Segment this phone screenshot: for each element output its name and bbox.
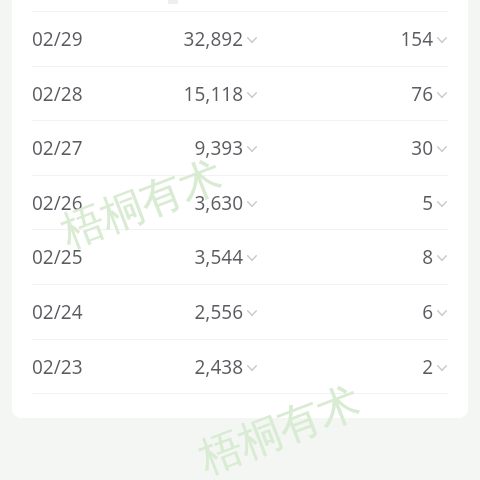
staticText: 02/29 xyxy=(32,26,83,52)
staticText: 5 xyxy=(422,190,433,216)
button[interactable]: 02/27 xyxy=(32,121,448,175)
button[interactable]: 3,630 xyxy=(148,190,258,216)
button[interactable]: 154 xyxy=(382,26,448,52)
button[interactable]: 2 xyxy=(382,354,448,380)
staticText: 2,438 xyxy=(194,354,243,380)
button[interactable]: 02/29 xyxy=(32,12,448,66)
staticText: 32,892 xyxy=(183,26,243,52)
staticText: 梧桐有术 xyxy=(192,376,368,480)
staticText: 02/28 xyxy=(32,81,83,107)
button[interactable]: 3,544 xyxy=(148,244,258,270)
staticText: 6 xyxy=(422,299,433,325)
staticText: 02/27 xyxy=(32,135,83,161)
button[interactable]: 02/26 xyxy=(32,176,448,230)
button[interactable]: 5 xyxy=(382,190,448,216)
staticText: 30 xyxy=(411,135,433,161)
staticText: 3,544 xyxy=(194,244,243,270)
button[interactable]: 02/25 xyxy=(32,230,448,284)
button[interactable]: 9,393 xyxy=(148,135,258,161)
staticText: 3,630 xyxy=(194,190,243,216)
staticText: 8 xyxy=(422,244,433,270)
staticText: 2 xyxy=(422,354,433,380)
staticText: 02/23 xyxy=(32,354,83,380)
button[interactable]: 32,892 xyxy=(148,26,258,52)
staticText: 9,393 xyxy=(194,135,243,161)
staticText: 154 xyxy=(400,26,433,52)
button[interactable]: 02/23 xyxy=(32,340,448,394)
staticText: 15,118 xyxy=(183,81,243,107)
button[interactable]: 15,118 xyxy=(148,81,258,107)
button[interactable]: 76 xyxy=(382,81,448,107)
button[interactable]: 2,556 xyxy=(148,299,258,325)
button[interactable]: 02/28 xyxy=(32,67,448,121)
staticText: 76 xyxy=(411,81,433,107)
button[interactable]: 2,438 xyxy=(148,354,258,380)
button[interactable]: 8 xyxy=(382,244,448,270)
button[interactable]: 02/24 xyxy=(32,285,448,339)
button[interactable]: 30 xyxy=(382,135,448,161)
staticText: 02/26 xyxy=(32,190,83,216)
staticText: 2,556 xyxy=(194,299,243,325)
staticText: 02/25 xyxy=(32,244,83,270)
staticText: 梧桐有术 xyxy=(54,150,230,259)
staticText: 02/24 xyxy=(32,299,83,325)
button[interactable]: 6 xyxy=(382,299,448,325)
